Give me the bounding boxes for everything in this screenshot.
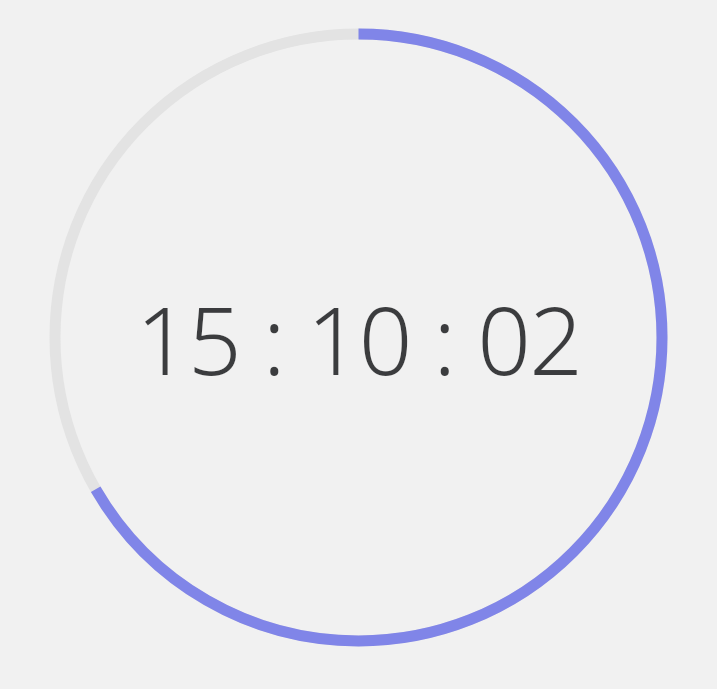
button[interactable]: 15 : 10 : 02 (0, 0, 717, 689)
staticText: 15 : 10 : 02 (136, 275, 582, 403)
